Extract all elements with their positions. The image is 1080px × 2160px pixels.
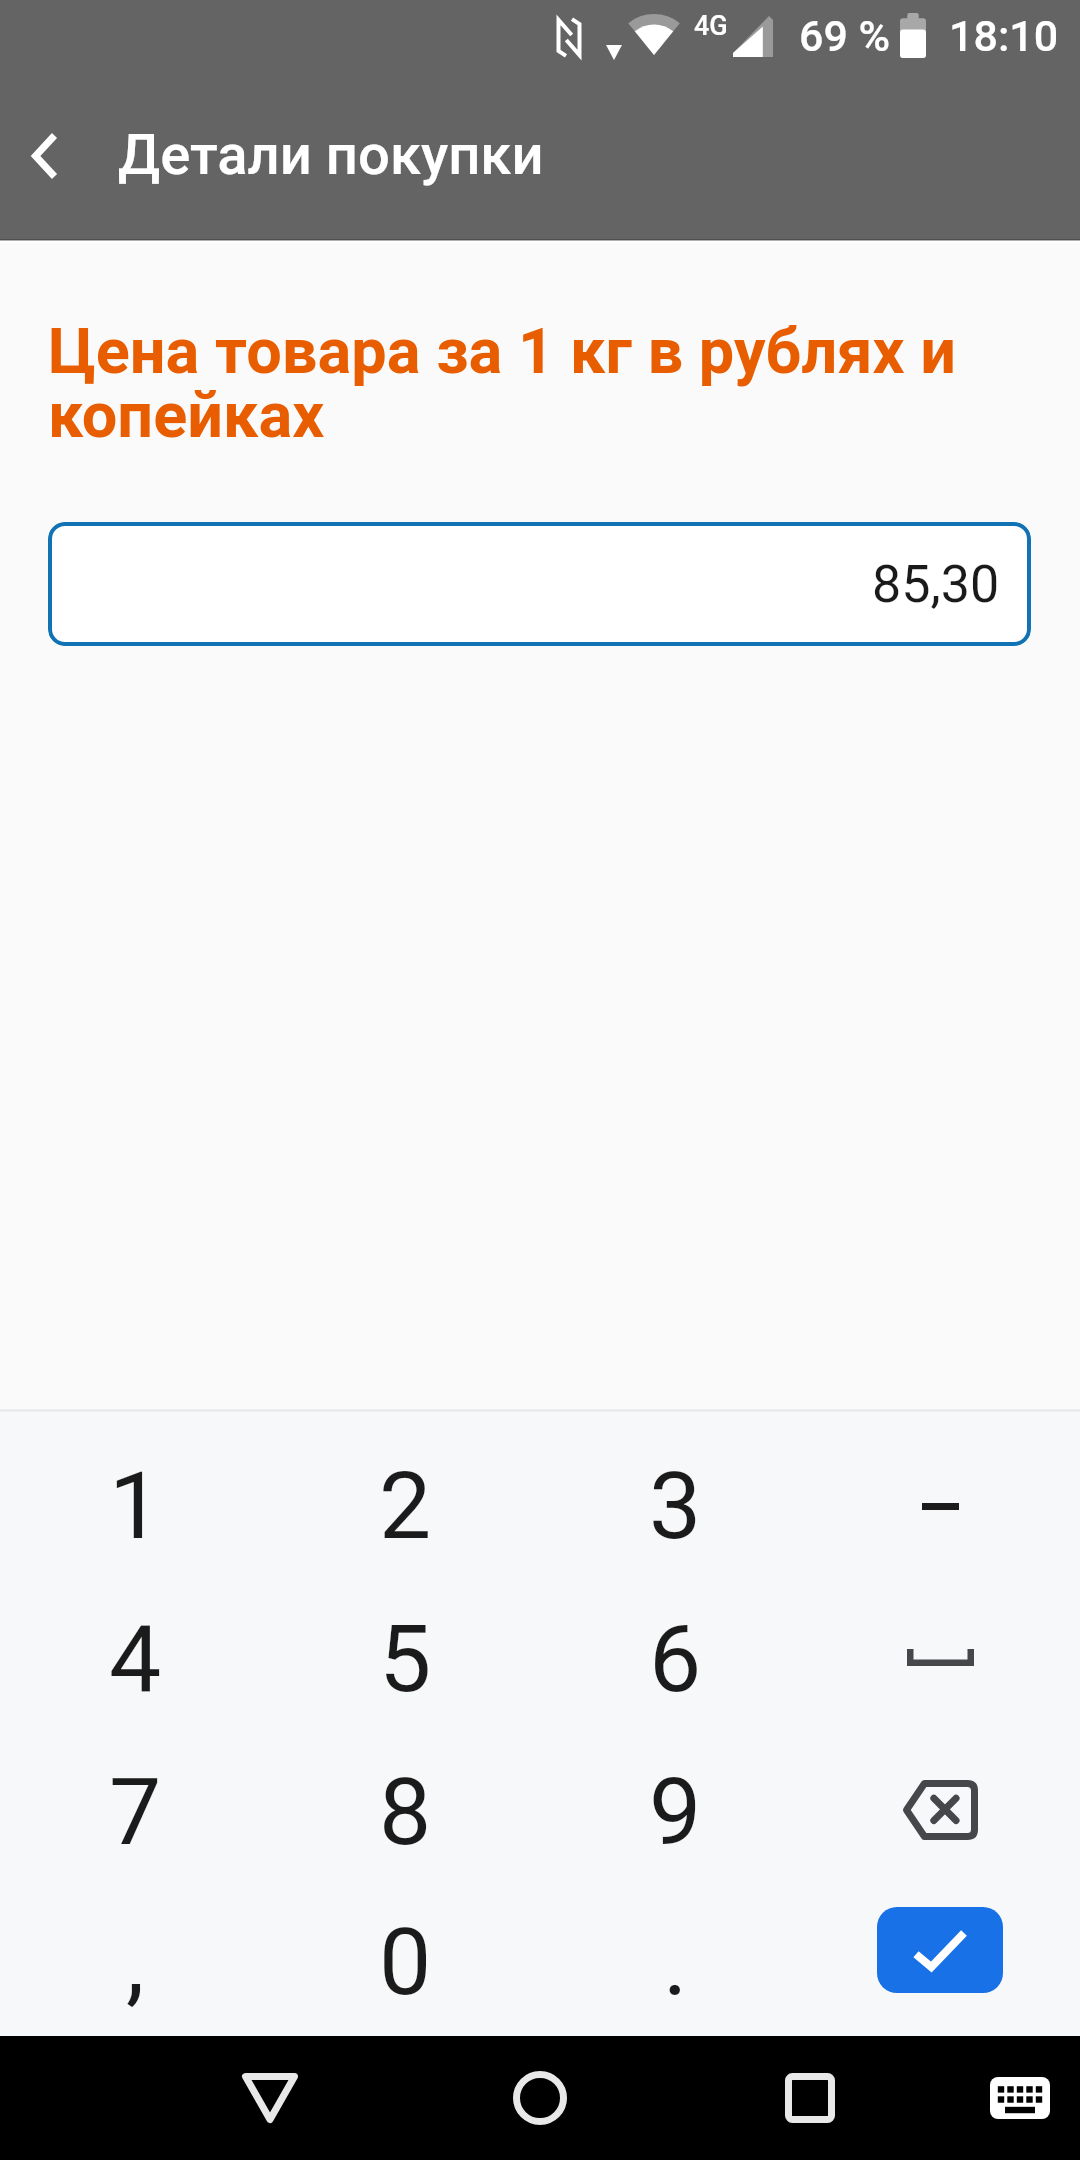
button[interactable]: 2 bbox=[270, 1430, 540, 1583]
staticText: 3 bbox=[649, 1452, 702, 1561]
staticText: 69 % bbox=[799, 11, 891, 61]
staticText: Цена товара за 1 кг в рублях и копейках bbox=[48, 315, 957, 452]
button[interactable]: 0 bbox=[270, 1889, 540, 2036]
staticText: Детали покупки bbox=[118, 122, 544, 188]
button[interactable]: Backspace bbox=[810, 1736, 1080, 1889]
staticText: 8 bbox=[379, 1758, 432, 1867]
button[interactable]: Done bbox=[810, 1889, 1080, 2036]
staticText: 0 bbox=[379, 1908, 432, 2017]
button[interactable]: Switch keyboard bbox=[970, 2048, 1070, 2148]
staticText: 1 bbox=[109, 1452, 162, 1561]
button[interactable]: Space bbox=[810, 1583, 1080, 1736]
button[interactable]: 1 bbox=[0, 1430, 270, 1583]
staticText: 2 bbox=[379, 1452, 432, 1561]
button[interactable]: 5 bbox=[270, 1583, 540, 1736]
staticText: 7 bbox=[109, 1758, 162, 1867]
staticText: 9 bbox=[649, 1758, 702, 1867]
button[interactable]: , bbox=[0, 1889, 270, 2036]
staticText: . bbox=[663, 1908, 688, 2017]
button[interactable]: Recents bbox=[740, 2036, 880, 2160]
button[interactable]: Back bbox=[200, 2036, 340, 2160]
button[interactable]: Back bbox=[0, 101, 100, 211]
staticText: 5 bbox=[379, 1605, 432, 1714]
staticText: 18:10 bbox=[949, 11, 1059, 61]
button[interactable]: Цена, поле ввода bbox=[48, 522, 1031, 646]
button[interactable]: Home bbox=[470, 2036, 610, 2160]
button[interactable]: 3 bbox=[540, 1430, 810, 1583]
staticText: 4G bbox=[694, 10, 728, 42]
button[interactable]: 4 bbox=[0, 1583, 270, 1736]
staticText: , bbox=[126, 1908, 145, 2017]
staticText: 85,30 bbox=[872, 554, 1000, 615]
button[interactable]: 7 bbox=[0, 1736, 270, 1889]
button[interactable]: Minus bbox=[810, 1430, 1080, 1583]
staticText: 6 bbox=[649, 1605, 702, 1714]
staticText: 4 bbox=[109, 1605, 162, 1714]
button[interactable]: 8 bbox=[270, 1736, 540, 1889]
button[interactable]: 6 bbox=[540, 1583, 810, 1736]
button[interactable]: . bbox=[540, 1889, 810, 2036]
button[interactable]: 9 bbox=[540, 1736, 810, 1889]
